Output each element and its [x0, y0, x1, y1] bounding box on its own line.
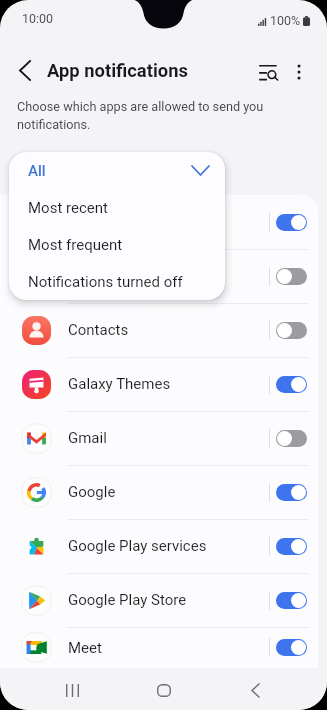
button[interactable]: Google Play Store [0, 573, 318, 627]
button[interactable]: Meet [0, 627, 318, 668]
button[interactable]: Home [148, 674, 180, 706]
button[interactable]: Off [276, 268, 307, 285]
button[interactable]: Recent apps [56, 674, 88, 706]
button[interactable]: On [276, 592, 307, 609]
button[interactable]: On [276, 639, 307, 656]
button[interactable]: Most frequent [9, 226, 225, 263]
staticText: Most frequent [28, 236, 123, 254]
button[interactable]: Clock [0, 249, 318, 303]
button[interactable]: Google Play services [0, 519, 318, 573]
staticText: Clock [68, 267, 106, 285]
staticText: Notifications turned off [28, 273, 183, 291]
staticText: Most recent [28, 199, 108, 217]
staticText: Google Play services [68, 537, 207, 555]
button[interactable]: All [9, 152, 225, 189]
staticText: Meet [68, 639, 102, 657]
button[interactable]: On [276, 214, 307, 231]
button[interactable]: Search [252, 55, 286, 89]
staticText: Choose which apps are allowed to send yo… [17, 99, 272, 132]
button[interactable]: Calendar [0, 195, 318, 249]
button[interactable]: Galaxy Themes [0, 357, 318, 411]
button[interactable]: Off [276, 322, 307, 339]
staticText: App notifications [47, 60, 188, 82]
button[interactable]: Gmail [0, 411, 318, 465]
button[interactable]: Navigate up [9, 54, 41, 86]
staticText: Google Play Store [68, 591, 187, 609]
button[interactable]: Most recent [9, 189, 225, 226]
staticText: 100% [270, 13, 301, 28]
button[interactable]: Back [239, 674, 271, 706]
button[interactable]: On [276, 376, 307, 393]
staticText: All [28, 162, 46, 180]
staticText: Google [68, 483, 116, 501]
staticText: Contacts [68, 321, 129, 339]
button[interactable]: Off [276, 430, 307, 447]
button[interactable]: More options [282, 55, 316, 89]
button[interactable]: Contacts [0, 303, 318, 357]
button[interactable]: On [276, 538, 307, 555]
button[interactable]: On [276, 484, 307, 501]
staticText: Galaxy Themes [68, 375, 171, 393]
button[interactable]: Google [0, 465, 318, 519]
staticText: 10:00 [22, 11, 54, 26]
staticText: Gmail [68, 429, 107, 447]
button[interactable]: Notifications turned off [9, 263, 225, 300]
